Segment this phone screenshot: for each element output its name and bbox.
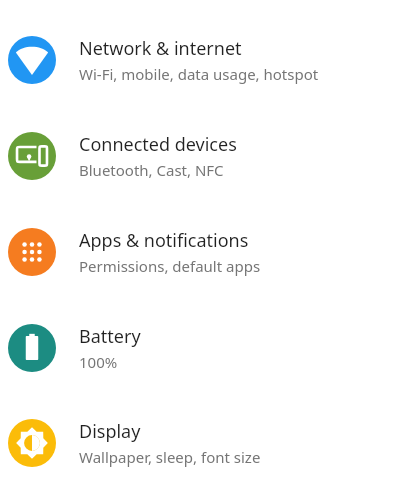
- staticText: Bluetooth, Cast, NFC: [79, 160, 224, 180]
- staticText: Wallpaper, sleep, font size: [79, 447, 261, 467]
- button[interactable]: Network and internet: [0, 12, 400, 108]
- staticText: 100%: [79, 352, 118, 372]
- staticText: Apps & notifications: [79, 228, 249, 253]
- staticText: Connected devices: [79, 132, 237, 157]
- other: Connected devices: [8, 132, 56, 180]
- staticText: Battery: [79, 324, 141, 349]
- other: Battery: [8, 324, 56, 372]
- button[interactable]: Battery: [0, 300, 400, 396]
- other: Display: [8, 419, 56, 467]
- button[interactable]: Apps and notifications: [0, 204, 400, 300]
- staticText: Permissions, default apps: [79, 256, 261, 276]
- button[interactable]: Display: [0, 396, 400, 489]
- staticText: Display: [79, 419, 141, 444]
- staticText: Wi-Fi, mobile, data usage, hotspot: [79, 64, 319, 84]
- button[interactable]: Connected devices: [0, 108, 400, 204]
- staticText: Network & internet: [79, 36, 242, 61]
- other: Network and internet: [8, 36, 56, 84]
- other: Apps and notifications: [8, 228, 56, 276]
